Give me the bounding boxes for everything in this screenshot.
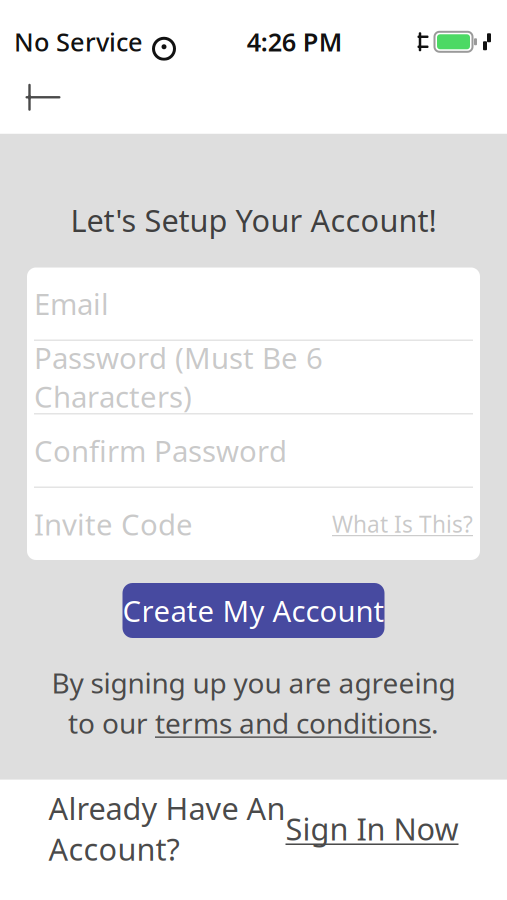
staticText: 4:26 PM bbox=[247, 25, 343, 59]
staticText: Password (Must Be 6 Characters) bbox=[34, 338, 323, 416]
button[interactable]: Password (Must Be 6 Characters) bbox=[27, 341, 480, 413]
staticText: No Service bbox=[14, 25, 143, 59]
staticText: Confirm Password bbox=[34, 431, 287, 470]
button[interactable]: Email bbox=[27, 267, 480, 339]
button[interactable]: What Is This? bbox=[332, 488, 473, 560]
staticText: Sign In Now bbox=[285, 808, 458, 849]
staticText: Invite Code bbox=[34, 504, 193, 543]
button[interactable]: Confirm Password bbox=[27, 414, 480, 486]
staticText: By signing up you are agreeing bbox=[51, 664, 455, 701]
staticText: terms and conditions bbox=[155, 704, 431, 741]
staticText: What Is This? bbox=[332, 509, 473, 539]
staticText: Let's Setup Your Account! bbox=[70, 200, 436, 240]
button[interactable]: Already Have An Account? bbox=[48, 788, 458, 869]
button[interactable]: Create My Account bbox=[122, 583, 384, 638]
staticText: Email bbox=[34, 284, 109, 323]
staticText: Already Have An Account? bbox=[48, 788, 285, 869]
staticText: Create My Account bbox=[122, 591, 384, 630]
staticText: to our bbox=[68, 704, 155, 741]
button[interactable]: terms and conditions bbox=[155, 704, 431, 741]
button[interactable]: Back bbox=[12, 66, 74, 128]
button[interactable]: Invite Code bbox=[34, 488, 332, 560]
staticText: . bbox=[431, 704, 439, 741]
